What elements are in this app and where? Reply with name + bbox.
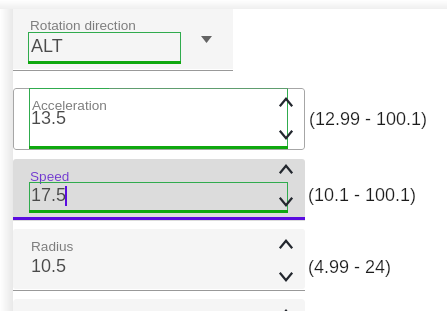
button[interactable]: Acceleration stepper	[274, 94, 298, 139]
button[interactable]: Open rotation direction dropdown	[194, 28, 218, 50]
staticText: Radius	[31, 239, 74, 254]
button[interactable]	[13, 299, 305, 311]
staticText: (12.99 - 100.1)	[309, 109, 428, 129]
button[interactable]	[13, 0, 233, 69]
staticText: ALT	[31, 36, 63, 56]
button[interactable]: Speed stepper	[274, 161, 298, 206]
staticText: Acceleration	[32, 98, 107, 113]
staticText: Rotation direction	[30, 18, 136, 33]
staticText: (10.1 - 100.1)	[308, 185, 417, 205]
staticText: Speed	[30, 169, 70, 184]
staticText: (4.99 - 24)	[308, 257, 392, 277]
staticText: 13.5	[31, 108, 67, 128]
staticText: 10.5	[31, 256, 67, 276]
button[interactable]	[13, 159, 305, 221]
button[interactable]: Radius stepper	[274, 236, 298, 281]
button[interactable]	[13, 88, 305, 150]
button[interactable]	[13, 229, 305, 289]
staticText: 17.5	[31, 185, 67, 205]
